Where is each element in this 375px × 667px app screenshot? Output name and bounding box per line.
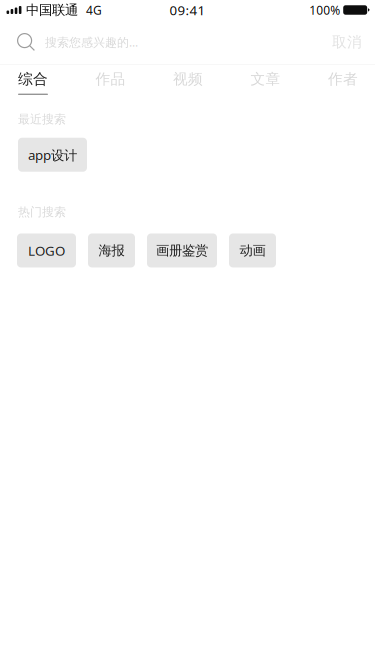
staticText: 取消 xyxy=(332,33,362,51)
button[interactable]: app设计 xyxy=(18,138,87,172)
staticText: 海报 xyxy=(98,242,124,259)
button[interactable]: 作品 xyxy=(95,65,173,99)
button[interactable]: 作者 xyxy=(328,65,375,99)
button[interactable]: LOGO xyxy=(17,233,76,267)
button[interactable]: 综合 xyxy=(18,65,95,99)
staticText: 4G xyxy=(86,2,102,18)
staticText: 作者 xyxy=(328,70,358,88)
button[interactable]: 动画 xyxy=(229,233,276,267)
staticText: app设计 xyxy=(28,146,77,164)
staticText: 中国联通 xyxy=(26,2,78,18)
staticText: 最近搜索 xyxy=(18,112,66,127)
staticText: 视频 xyxy=(173,70,203,88)
staticText: LOGO xyxy=(28,242,65,259)
button[interactable]: 画册鉴赏 xyxy=(147,233,217,267)
button[interactable]: 海报 xyxy=(88,233,135,267)
staticText: 热门搜索 xyxy=(18,205,66,219)
button[interactable]: 文章 xyxy=(250,65,328,99)
staticText: 综合 xyxy=(18,70,48,88)
button[interactable]: 取消 xyxy=(316,20,375,64)
staticText: 动画 xyxy=(239,242,265,259)
staticText: 文章 xyxy=(250,70,280,88)
button[interactable]: 视频 xyxy=(173,65,250,99)
staticText: 画册鉴赏 xyxy=(156,242,208,259)
staticText: 搜索您感兴趣的... xyxy=(45,34,138,50)
staticText: 09:41 xyxy=(169,1,205,19)
staticText: 作品 xyxy=(95,70,125,88)
button[interactable]: 搜索 xyxy=(0,20,316,64)
staticText: 100% xyxy=(309,2,340,18)
